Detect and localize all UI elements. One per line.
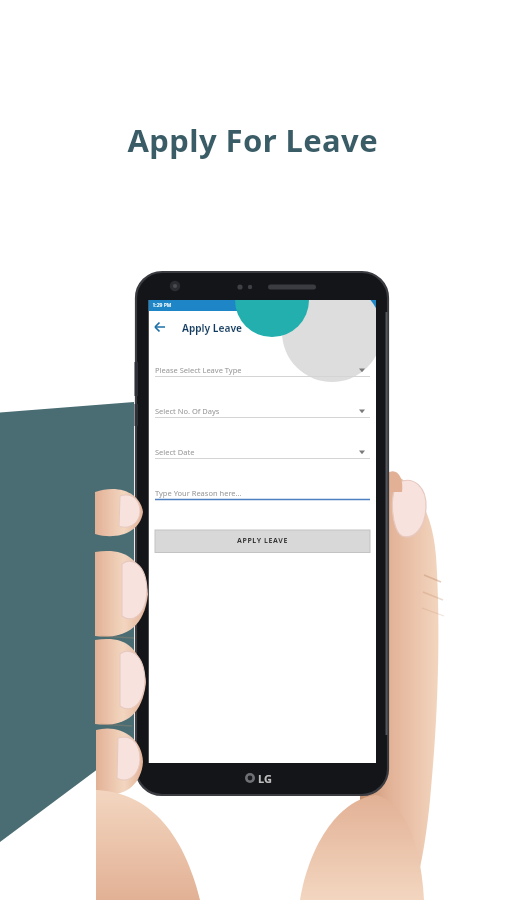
button[interactable]: Apply For Leave app preview <box>0 0 506 900</box>
